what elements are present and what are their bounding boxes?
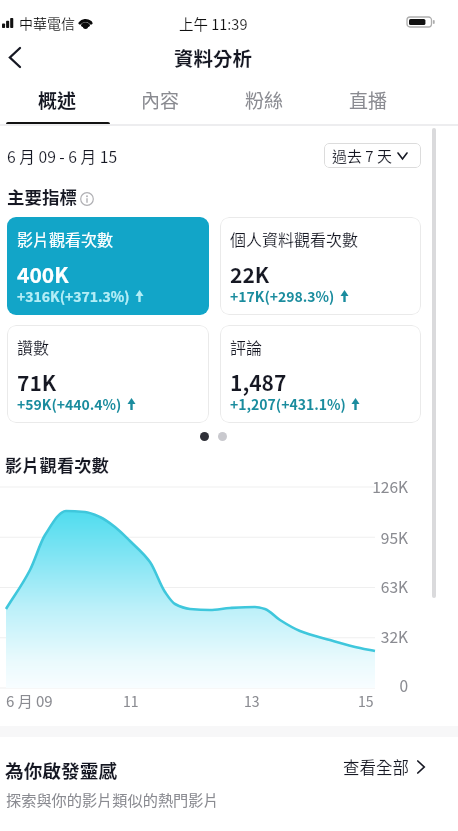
button[interactable]: 概述 — [6, 78, 109, 122]
button[interactable]: 粉絲 — [212, 78, 316, 122]
staticText: 15 — [358, 691, 374, 711]
staticText: 0 — [356, 674, 408, 696]
button[interactable]: 內容 — [109, 78, 212, 122]
button[interactable]: 查看全部 — [343, 755, 425, 779]
button[interactable]: Back — [0, 36, 44, 78]
staticText: 主要指標 — [7, 184, 77, 209]
staticText: 6 月 09 - 6 月 15 — [7, 145, 118, 168]
staticText: 直播 — [349, 86, 388, 114]
staticText: 中華電信 — [19, 13, 75, 33]
staticText: 為你啟發靈感 — [5, 756, 118, 783]
staticText: 讚數 — [17, 335, 50, 358]
staticText: 71K — [17, 367, 57, 397]
staticText: 上午 11:39 — [179, 13, 248, 34]
staticText: 400K — [17, 259, 69, 289]
staticText: 63K — [356, 575, 408, 597]
staticText: 95K — [356, 526, 408, 548]
staticText: 查看全部 — [343, 755, 409, 779]
button[interactable]: 影片觀看次數 — [7, 217, 209, 315]
staticText: 過去 7 天 — [332, 145, 393, 167]
button[interactable]: 直播 — [316, 78, 420, 122]
staticText: 內容 — [141, 86, 180, 114]
staticText: 13 — [244, 691, 260, 711]
staticText: 1,487 — [230, 367, 287, 397]
staticText: 資料分析 — [174, 43, 253, 71]
button[interactable]: 過去 7 天 — [324, 143, 421, 168]
staticText: 粉絲 — [245, 86, 284, 114]
staticText: 評論 — [230, 335, 263, 358]
staticText: 11 — [123, 691, 139, 711]
button[interactable]: 讚數 — [7, 325, 209, 423]
staticText: +59K(+440.4%) — [17, 394, 122, 414]
staticText: 概述 — [38, 86, 77, 114]
staticText: 32K — [356, 625, 408, 647]
staticText: 探索與你的影片類似的熱門影片 — [6, 788, 219, 810]
staticText: 6 月 09 — [6, 690, 53, 712]
staticText: +1,207(+431.1%) — [230, 394, 346, 414]
button[interactable]: 評論 — [220, 325, 421, 423]
staticText: 22K — [230, 259, 270, 289]
staticText: +17K(+298.3%) — [230, 286, 335, 306]
button[interactable]: 個人資料觀看次數 — [220, 217, 421, 315]
staticText: 126K — [356, 475, 408, 497]
staticText: 影片觀看次數 — [17, 227, 114, 250]
staticText: 個人資料觀看次數 — [230, 227, 359, 250]
staticText: 影片觀看次數 — [5, 452, 109, 477]
staticText: +316K(+371.3%) — [17, 286, 130, 306]
